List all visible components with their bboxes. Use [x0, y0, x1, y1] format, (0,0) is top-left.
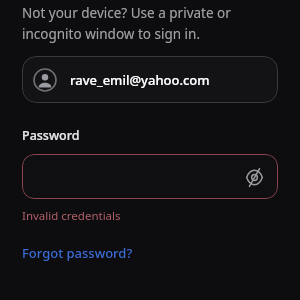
- staticText: Invalid credentials: [22, 208, 121, 224]
- button[interactable]: Show password: [240, 163, 268, 191]
- staticText: Forgot password?: [22, 244, 133, 262]
- staticText: rave_emil@yahoo.com: [70, 71, 210, 89]
- button[interactable]: Forgot password?: [22, 244, 133, 262]
- button[interactable]: Show password: [22, 154, 278, 199]
- staticText: Password: [22, 127, 80, 144]
- button[interactable]: rave_emil@yahoo.com: [22, 56, 278, 103]
- staticText: Not your device? Use a private or incogn…: [22, 4, 284, 43]
